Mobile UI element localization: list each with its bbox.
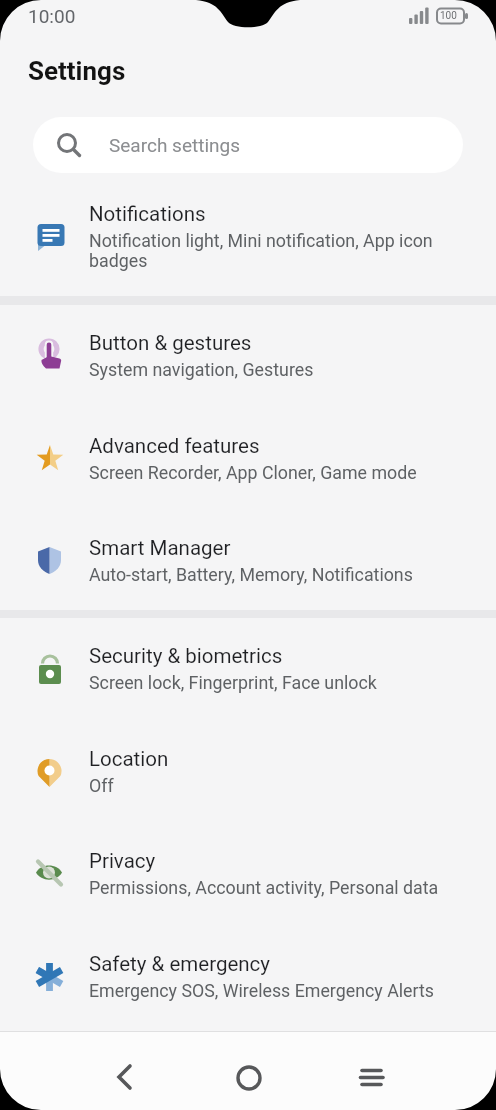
staticText: Search settings [109,134,240,156]
staticText: Security & biometrics [89,644,283,668]
staticText: Advanced features [89,434,260,458]
staticText: Permissions, Account activity, Personal … [89,877,439,898]
staticText: System navigation, Gestures [89,359,314,380]
button[interactable] [221,1049,277,1105]
staticText: Notifications [89,202,206,226]
staticText: 10:00 [28,5,76,27]
button[interactable]: Smart Manager [0,530,496,623]
button[interactable]: Privacy [0,843,496,936]
staticText: Privacy [89,849,156,873]
staticText: Location [89,747,169,771]
staticText: Screen lock, Fingerprint, Face unlock [89,672,377,693]
staticText: Settings [28,56,126,86]
button[interactable] [344,1049,400,1105]
staticText: Off [89,775,114,796]
button[interactable]: Security & biometrics [0,638,496,731]
staticText: Emergency SOS, Wireless Emergency Alerts [89,980,434,1001]
staticText: 100 [440,10,457,22]
staticText: Notification light, Mini notification, A… [89,230,433,271]
button[interactable] [96,1049,152,1105]
staticText: Safety & emergency [89,952,271,976]
button[interactable]: Location [0,741,496,834]
staticText: Button & gestures [89,331,252,355]
staticText: Smart Manager [89,536,231,560]
button[interactable]: Search settings [33,117,463,173]
button[interactable]: Advanced features [0,428,496,521]
staticText: Screen Recorder, App Cloner, Game mode [89,462,417,483]
button[interactable]: Button & gestures [0,325,496,418]
button[interactable]: Notifications [0,196,496,296]
button[interactable]: Safety & emergency [0,946,496,1039]
staticText: Auto-start, Battery, Memory, Notificatio… [89,564,413,585]
